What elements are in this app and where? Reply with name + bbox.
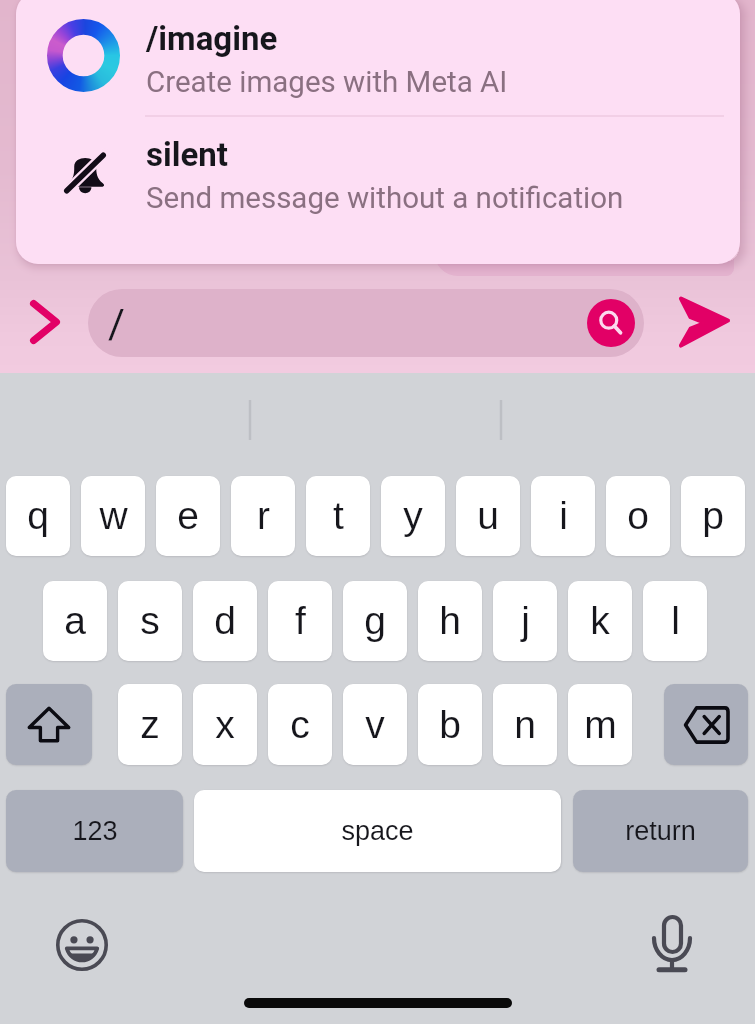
button[interactable]: q bbox=[6, 476, 70, 556]
button[interactable]: Send bbox=[678, 296, 730, 348]
button[interactable]: f bbox=[268, 581, 332, 661]
button[interactable]: space bbox=[194, 790, 561, 872]
staticText: g bbox=[364, 599, 386, 643]
staticText: k bbox=[590, 599, 610, 643]
staticText: 123 bbox=[72, 816, 118, 846]
button[interactable]: s bbox=[118, 581, 182, 661]
staticText: y bbox=[403, 494, 423, 538]
staticText: p bbox=[702, 494, 724, 538]
button[interactable]: p bbox=[681, 476, 745, 556]
staticText: f bbox=[295, 599, 306, 643]
button[interactable]: y bbox=[381, 476, 445, 556]
staticText: b bbox=[439, 703, 461, 747]
button[interactable]: a bbox=[43, 581, 107, 661]
staticText: m bbox=[584, 703, 617, 747]
staticText: d bbox=[214, 599, 236, 643]
button[interactable]: Dictation bbox=[652, 913, 692, 971]
button[interactable]: Emoji bbox=[56, 919, 108, 971]
staticText: v bbox=[365, 703, 385, 747]
button[interactable]: 123 bbox=[6, 790, 183, 872]
button[interactable]: Backspace bbox=[664, 684, 748, 765]
button[interactable]: t bbox=[306, 476, 370, 556]
staticText: / bbox=[108, 300, 125, 348]
staticText: a bbox=[64, 599, 86, 643]
button[interactable]: r bbox=[231, 476, 295, 556]
staticText: h bbox=[439, 599, 461, 643]
staticText: e bbox=[177, 494, 199, 538]
staticText: /imagine bbox=[146, 19, 278, 58]
button[interactable]: return bbox=[573, 790, 748, 872]
staticText: c bbox=[290, 703, 310, 747]
staticText: Create images with Meta AI bbox=[146, 65, 508, 100]
button[interactable]: Expand actions bbox=[20, 297, 70, 347]
button[interactable]: c bbox=[268, 684, 332, 765]
button[interactable]: Shift bbox=[6, 684, 92, 765]
button[interactable]: b bbox=[418, 684, 482, 765]
staticText: j bbox=[521, 599, 530, 643]
staticText: u bbox=[477, 494, 499, 538]
staticText: q bbox=[27, 494, 49, 538]
button[interactable]: e bbox=[156, 476, 220, 556]
button[interactable]: i bbox=[531, 476, 595, 556]
button[interactable]: j bbox=[493, 581, 557, 661]
staticText: return bbox=[625, 816, 696, 846]
button[interactable]: o bbox=[606, 476, 670, 556]
staticText: w bbox=[99, 494, 128, 538]
button[interactable]: z bbox=[118, 684, 182, 765]
staticText: t bbox=[333, 494, 344, 538]
button[interactable]: d bbox=[193, 581, 257, 661]
staticText: x bbox=[215, 703, 235, 747]
staticText: Send message without a notification bbox=[146, 181, 624, 216]
staticText: i bbox=[559, 494, 568, 538]
button[interactable]: n bbox=[493, 684, 557, 765]
staticText: n bbox=[514, 703, 536, 747]
button[interactable]: m bbox=[568, 684, 632, 765]
staticText: s bbox=[140, 599, 160, 643]
button[interactable]: x bbox=[193, 684, 257, 765]
button[interactable]: / bbox=[88, 289, 644, 357]
button[interactable]: Search bbox=[587, 299, 635, 347]
staticText: z bbox=[140, 703, 160, 747]
staticText: space bbox=[341, 816, 414, 846]
button[interactable]: l bbox=[643, 581, 707, 661]
button[interactable]: w bbox=[81, 476, 145, 556]
button[interactable]: h bbox=[418, 581, 482, 661]
staticText: o bbox=[627, 494, 649, 538]
button[interactable]: v bbox=[343, 684, 407, 765]
staticText: r bbox=[257, 494, 270, 538]
button[interactable]: u bbox=[456, 476, 520, 556]
button[interactable]: g bbox=[343, 581, 407, 661]
staticText: l bbox=[671, 599, 680, 643]
button[interactable]: k bbox=[568, 581, 632, 661]
staticText: silent bbox=[146, 135, 228, 174]
